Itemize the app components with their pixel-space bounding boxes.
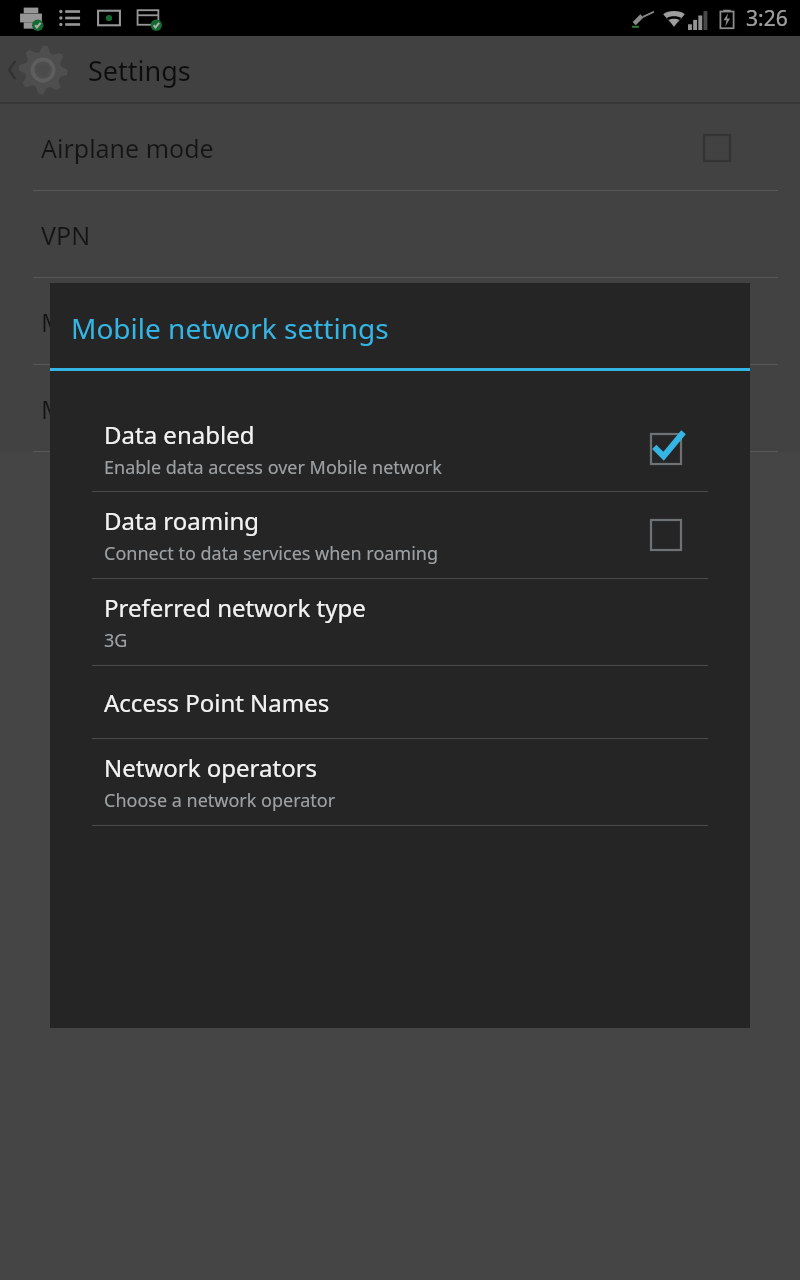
staticText: Preferred network type [104, 591, 366, 624]
staticText: Mobile network settings [71, 309, 389, 347]
button[interactable]: Network operators [50, 739, 750, 825]
button[interactable]: Mobile networks [0, 278, 800, 365]
button[interactable]: Data enabled [50, 406, 750, 491]
button[interactable]: Data roaming [644, 513, 688, 557]
button[interactable]: VPN [0, 191, 800, 278]
button[interactable]: Navigate up [0, 36, 78, 104]
button[interactable]: Airplane mode [0, 104, 800, 191]
staticText: Data roaming [104, 504, 259, 537]
staticText: Airplane mode [41, 131, 214, 165]
staticText: Connect to data services when roaming [104, 541, 439, 566]
button[interactable]: Data roaming [50, 492, 750, 578]
staticText: VPN [41, 218, 91, 252]
staticText: Settings [88, 52, 191, 89]
staticText: Data enabled [104, 418, 255, 451]
button[interactable]: Preferred network type [50, 579, 750, 665]
button[interactable]: Data enabled [644, 427, 688, 471]
staticText: Choose a network operator [104, 788, 336, 813]
staticText: Access Point Names [104, 686, 330, 719]
staticText: Network operators [104, 751, 318, 784]
staticText: 3:26 [746, 4, 788, 33]
staticText: Mobile networks [41, 305, 237, 339]
staticText: 3G [104, 628, 128, 653]
button[interactable]: Access Point Names [50, 666, 750, 738]
button[interactable]: More... [0, 365, 800, 452]
staticText: Enable data access over Mobile network [104, 455, 442, 480]
staticText: More... [41, 392, 123, 426]
